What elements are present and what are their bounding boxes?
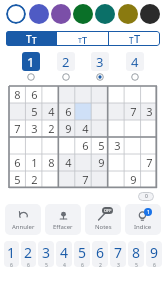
staticText: 8 <box>14 87 21 102</box>
button[interactable]: OFF <box>85 204 121 235</box>
button[interactable]: 3 <box>91 52 109 81</box>
staticText: 5 <box>45 262 48 267</box>
button[interactable]: Colour 5 <box>118 4 138 24</box>
staticText: Notes <box>95 223 112 231</box>
staticText: T <box>82 34 88 46</box>
button[interactable]: T <box>109 31 160 46</box>
staticText: 5 <box>98 138 105 153</box>
staticText: 8 <box>48 155 55 170</box>
staticText: 6 <box>81 262 84 267</box>
staticText: 7 <box>146 155 153 170</box>
staticText: 7 <box>130 104 137 119</box>
staticText: 5 <box>14 172 21 187</box>
staticText: 2 <box>31 172 38 187</box>
staticText: 4 <box>65 155 72 170</box>
staticText: 9 <box>150 243 159 262</box>
button[interactable]: 4 <box>56 241 72 267</box>
button[interactable]: 8 <box>9 86 157 188</box>
button[interactable]: 1 <box>125 204 161 235</box>
staticText: T <box>32 35 37 46</box>
staticText: 9 <box>98 155 105 170</box>
button[interactable]: 1 <box>4 241 19 267</box>
staticText: 6 <box>27 262 30 267</box>
staticText: 6 <box>14 155 21 170</box>
button[interactable]: T <box>57 31 108 46</box>
button[interactable]: Counter <box>138 192 154 201</box>
staticText: 4 <box>82 121 89 136</box>
staticText: 6 <box>10 262 13 267</box>
staticText: Effacer <box>53 223 73 231</box>
staticText: 1 <box>31 155 38 170</box>
button[interactable]: T <box>6 31 56 46</box>
button[interactable]: Annuler <box>5 204 41 235</box>
staticText: 9 <box>130 172 137 187</box>
staticText: 2 <box>48 121 55 136</box>
staticText: 5 <box>135 262 138 267</box>
staticText: 6 <box>31 87 38 102</box>
button[interactable]: 5 <box>74 241 90 267</box>
staticText: 8 <box>132 243 141 262</box>
staticText: 0 <box>145 193 148 200</box>
staticText: 1 <box>7 243 16 262</box>
staticText: 3 <box>42 243 51 262</box>
staticText: 3 <box>31 121 38 136</box>
staticText: T <box>78 36 82 46</box>
staticText: 9 <box>65 121 72 136</box>
staticText: 1 <box>147 209 150 216</box>
staticText: 4 <box>60 243 69 262</box>
button[interactable]: 3 <box>38 241 54 267</box>
button[interactable]: 2 <box>57 52 75 81</box>
button[interactable]: 6 <box>92 241 108 267</box>
staticText: 2 <box>62 53 70 71</box>
button[interactable]: Colour 2 <box>51 4 71 24</box>
staticText: 6 <box>65 104 72 119</box>
staticText: 4 <box>131 53 139 71</box>
staticText: 4 <box>48 104 55 119</box>
button[interactable]: 1 <box>22 52 40 81</box>
staticText: T <box>129 35 134 46</box>
button[interactable]: Effacer <box>45 204 81 235</box>
button[interactable]: Colour 0 <box>6 4 26 24</box>
staticText: 7 <box>14 121 21 136</box>
staticText: 6 <box>153 262 156 267</box>
button[interactable]: Colour 4 <box>95 4 115 24</box>
staticText: 5 <box>78 243 87 262</box>
button[interactable]: 2 <box>21 241 36 267</box>
staticText: 3 <box>96 53 104 71</box>
staticText: 6 <box>96 243 105 262</box>
staticText: 2 <box>24 243 33 262</box>
staticText: T <box>134 31 141 46</box>
staticText: Indice <box>134 223 152 231</box>
staticText: 6 <box>82 138 89 153</box>
staticText: T <box>26 32 32 46</box>
staticText: 7 <box>114 243 123 262</box>
button[interactable]: Colour 1 <box>29 4 49 24</box>
staticText: 2 <box>99 262 102 267</box>
staticText: 3 <box>146 104 153 119</box>
staticText: OFF <box>104 208 112 213</box>
staticText: 4 <box>63 262 66 267</box>
button[interactable]: 8 <box>128 241 144 267</box>
staticText: 5 <box>31 104 38 119</box>
button[interactable]: 7 <box>110 241 126 267</box>
staticText: 3 <box>117 262 120 267</box>
button[interactable]: 9 <box>146 241 162 267</box>
button[interactable]: Colour 6 <box>140 4 160 24</box>
staticText: 7 <box>82 172 89 187</box>
button[interactable]: Colour 3 <box>73 4 93 24</box>
staticText: 3 <box>114 138 121 153</box>
button[interactable]: 4 <box>126 52 144 81</box>
staticText: Annuler <box>12 223 35 231</box>
staticText: 1 <box>27 53 35 71</box>
